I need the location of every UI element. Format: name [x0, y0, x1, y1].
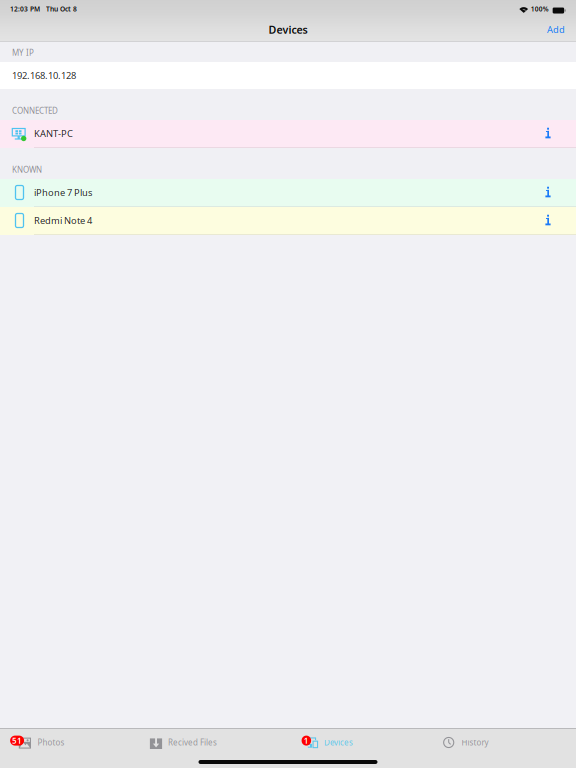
staticText: Photos — [37, 737, 64, 748]
staticText: History — [461, 737, 488, 748]
staticText: MY IP — [12, 47, 34, 58]
staticText: 100% — [531, 5, 549, 13]
staticText: Devices — [324, 737, 353, 748]
button[interactable]: KANT-PC — [0, 120, 576, 148]
staticText: 51 — [12, 735, 22, 746]
button[interactable]: Add — [542, 18, 570, 41]
staticText: iPhone 7 Plus — [34, 186, 92, 199]
staticText: Redmi Note 4 — [34, 214, 92, 227]
button[interactable]: Redmi Note 4 — [0, 207, 576, 235]
button[interactable]: History — [432, 727, 576, 757]
staticText: CONNECTED — [12, 105, 58, 116]
button[interactable]: 1 — [288, 727, 432, 757]
button[interactable]: iPhone 7 Plus — [0, 179, 576, 207]
staticText: KNOWN — [12, 164, 42, 175]
staticText: Thu Oct 8 — [46, 5, 77, 13]
staticText: 12:03 PM — [10, 5, 40, 13]
button[interactable]: Recived Files — [144, 727, 288, 757]
staticText: 1 — [304, 735, 309, 746]
staticText: Add — [547, 23, 565, 36]
staticText: 192.168.10.128 — [12, 69, 76, 82]
button[interactable]: 51 — [0, 727, 144, 757]
staticText: Recived Files — [168, 737, 217, 748]
staticText: Devices — [268, 22, 307, 37]
staticText: KANT-PC — [34, 127, 73, 140]
